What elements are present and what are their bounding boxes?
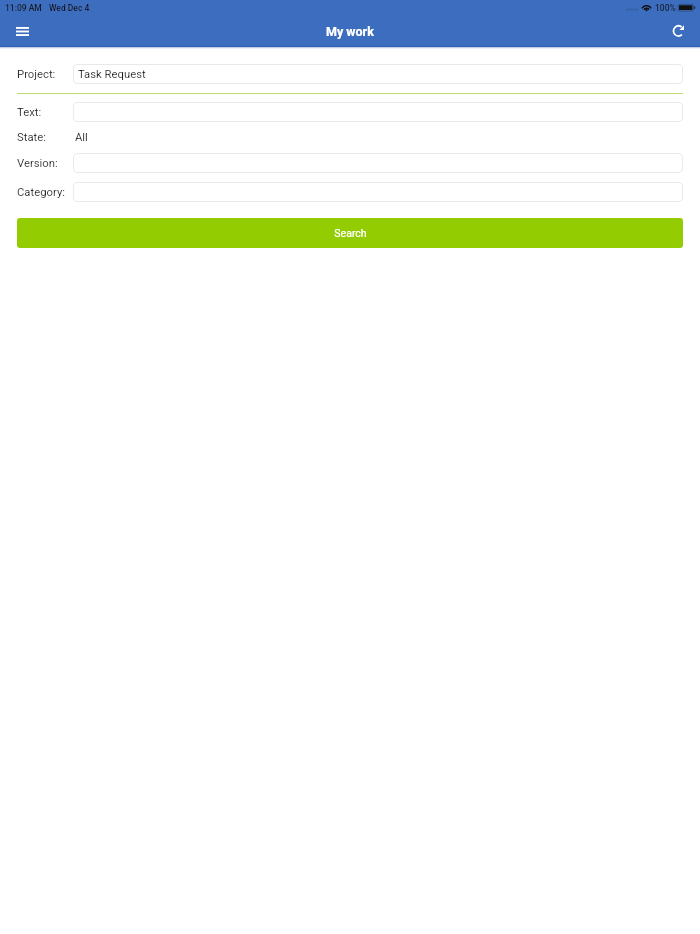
button[interactable] bbox=[73, 182, 683, 202]
staticText: All bbox=[75, 131, 88, 144]
staticText: 11:09 AM bbox=[5, 3, 42, 13]
button[interactable]: Task Request bbox=[73, 64, 683, 84]
staticText: Search bbox=[334, 227, 367, 239]
staticText: 100% bbox=[655, 3, 676, 13]
staticText: State: bbox=[17, 131, 46, 144]
staticText: Task Request bbox=[78, 68, 146, 81]
button[interactable] bbox=[73, 153, 683, 173]
staticText: Version: bbox=[17, 157, 58, 170]
staticText: Text: bbox=[17, 106, 42, 119]
button[interactable]: Refresh bbox=[663, 15, 693, 47]
staticText: Wed Dec 4 bbox=[49, 3, 90, 13]
button[interactable] bbox=[73, 102, 683, 122]
button[interactable]: All bbox=[73, 127, 683, 147]
staticText: Project: bbox=[17, 68, 56, 81]
staticText: Category: bbox=[17, 186, 65, 199]
button[interactable]: Open navigation menu bbox=[6, 15, 38, 47]
staticText: My work bbox=[326, 24, 374, 39]
button[interactable]: Search bbox=[17, 218, 683, 248]
